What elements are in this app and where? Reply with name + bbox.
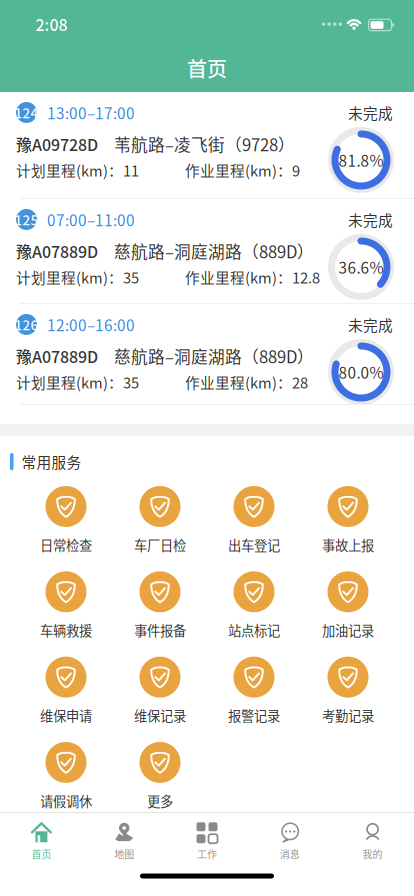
button[interactable]: 124 — [0, 92, 414, 198]
staticText: 考勤记录 — [322, 706, 374, 725]
staticText: 维保记录 — [134, 706, 186, 725]
button[interactable]: 考勤记录 — [301, 657, 395, 725]
staticText: 13:00–17:00 — [47, 101, 135, 124]
staticText: 常用服务 — [21, 451, 81, 472]
staticText: 首页 — [187, 53, 227, 82]
staticText: 未完成 — [348, 209, 393, 230]
button[interactable]: 我的 — [331, 817, 414, 866]
staticText: 124 — [14, 103, 38, 122]
staticText: 事故上报 — [322, 535, 374, 554]
button[interactable]: 125 — [0, 199, 414, 303]
button[interactable]: 请假调休 — [19, 742, 113, 810]
staticText: 站点标记 — [228, 620, 280, 640]
staticText: 日常检查 — [40, 535, 92, 554]
button[interactable]: 日常检查 — [19, 486, 113, 554]
button[interactable]: 车厂日检 — [113, 486, 207, 554]
staticText: 慈航路–洞庭湖路（889D） — [114, 239, 314, 263]
button[interactable]: 更多 — [113, 742, 207, 810]
staticText: 125 — [14, 210, 38, 229]
staticText: 2:08 — [35, 12, 67, 36]
button[interactable]: 首页 — [0, 817, 83, 866]
staticText: 加油记录 — [322, 620, 374, 640]
staticText: 作业里程(km)：12.8 — [185, 266, 320, 288]
staticText: 车辆救援 — [40, 620, 92, 640]
button[interactable]: 工作 — [166, 817, 248, 866]
staticText: 豫A09728D — [16, 132, 98, 156]
staticText: 作业里程(km)：28 — [185, 371, 308, 393]
staticText: 未完成 — [348, 314, 393, 335]
button[interactable]: 维保申请 — [19, 657, 113, 725]
button[interactable]: 报警记录 — [207, 657, 301, 725]
button[interactable]: 126 — [0, 304, 414, 404]
button[interactable]: 加油记录 — [301, 571, 395, 640]
staticText: 地图 — [114, 847, 134, 861]
button[interactable]: 站点标记 — [207, 571, 301, 640]
staticText: 工作 — [197, 847, 217, 861]
staticText: 豫A07889D — [16, 344, 98, 368]
staticText: 80.0% — [338, 361, 383, 383]
button[interactable]: 维保记录 — [113, 657, 207, 725]
staticText: 计划里程(km)：35 — [16, 266, 139, 288]
staticText: 车厂日检 — [134, 535, 186, 554]
staticText: 出车登记 — [228, 535, 280, 554]
staticText: 126 — [14, 315, 38, 334]
staticText: 07:00–11:00 — [47, 208, 135, 231]
staticText: 报警记录 — [228, 706, 280, 725]
button[interactable]: 事故上报 — [301, 486, 395, 554]
staticText: 我的 — [363, 847, 383, 861]
staticText: 更多 — [147, 791, 173, 810]
staticText: 作业里程(km)：9 — [185, 159, 300, 181]
button[interactable]: 车辆救援 — [19, 571, 113, 640]
staticText: 首页 — [31, 847, 51, 861]
staticText: 事件报备 — [134, 620, 186, 640]
staticText: 苇航路–凌飞街（9728） — [114, 132, 295, 156]
staticText: 请假调休 — [40, 791, 92, 810]
button[interactable]: 地图 — [83, 817, 166, 866]
staticText: 消息 — [280, 847, 300, 861]
staticText: 维保申请 — [40, 706, 92, 725]
staticText: 12:00–16:00 — [47, 313, 135, 336]
staticText: 36.6% — [338, 256, 383, 278]
staticText: 慈航路–洞庭湖路（889D） — [114, 344, 314, 368]
staticText: 未完成 — [348, 102, 393, 123]
staticText: 计划里程(km)：11 — [16, 159, 139, 181]
button[interactable]: 消息 — [248, 817, 331, 866]
staticText: 豫A07889D — [16, 239, 98, 263]
button[interactable]: 出车登记 — [207, 486, 301, 554]
staticText: 计划里程(km)：35 — [16, 371, 139, 393]
button[interactable]: 事件报备 — [113, 571, 207, 640]
staticText: 81.8% — [338, 149, 383, 171]
